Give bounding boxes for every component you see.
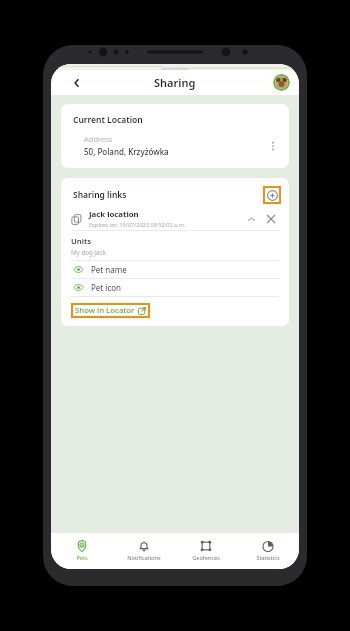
button[interactable]: Current Location bbox=[61, 104, 289, 168]
staticText: Expires on: 15/07/2023 09:52:02 a.m. bbox=[89, 221, 186, 229]
staticText: Statistics bbox=[256, 554, 280, 562]
staticText: Pet name bbox=[91, 264, 127, 275]
button[interactable]: Geofences bbox=[175, 533, 237, 569]
staticText: Address bbox=[84, 134, 113, 144]
button[interactable]: Back bbox=[67, 73, 87, 93]
staticText: Notifications bbox=[127, 554, 161, 562]
staticText: Jack location bbox=[89, 209, 139, 220]
button[interactable]: Pets bbox=[51, 533, 113, 569]
button[interactable]: Add sharing link bbox=[263, 186, 281, 204]
staticText: Sharing links bbox=[73, 189, 263, 201]
button[interactable]: Collapse bbox=[243, 211, 259, 227]
button[interactable]: More options bbox=[263, 136, 283, 156]
staticText: Geofences bbox=[192, 554, 220, 562]
staticText: Show in Locator bbox=[75, 305, 135, 316]
button[interactable]: Jack location bbox=[71, 208, 279, 230]
staticText: My dog Jack bbox=[71, 248, 106, 256]
staticText: 50, Poland, Krzyżówka bbox=[84, 146, 169, 157]
button[interactable]: Pet icon bbox=[74, 279, 279, 296]
staticText: Current Location bbox=[73, 114, 143, 126]
button[interactable]: Pet name bbox=[74, 261, 279, 278]
button[interactable]: Notifications bbox=[113, 533, 175, 569]
staticText: Pet icon bbox=[91, 282, 122, 293]
staticText: Sharing bbox=[154, 75, 196, 90]
staticText: Units bbox=[71, 236, 92, 247]
staticText: Pets bbox=[76, 554, 88, 562]
button[interactable]: Show in Locator bbox=[75, 305, 146, 316]
button[interactable]: Remove link bbox=[263, 211, 279, 227]
button[interactable]: Profile bbox=[273, 74, 290, 91]
button[interactable]: Statistics bbox=[237, 533, 299, 569]
